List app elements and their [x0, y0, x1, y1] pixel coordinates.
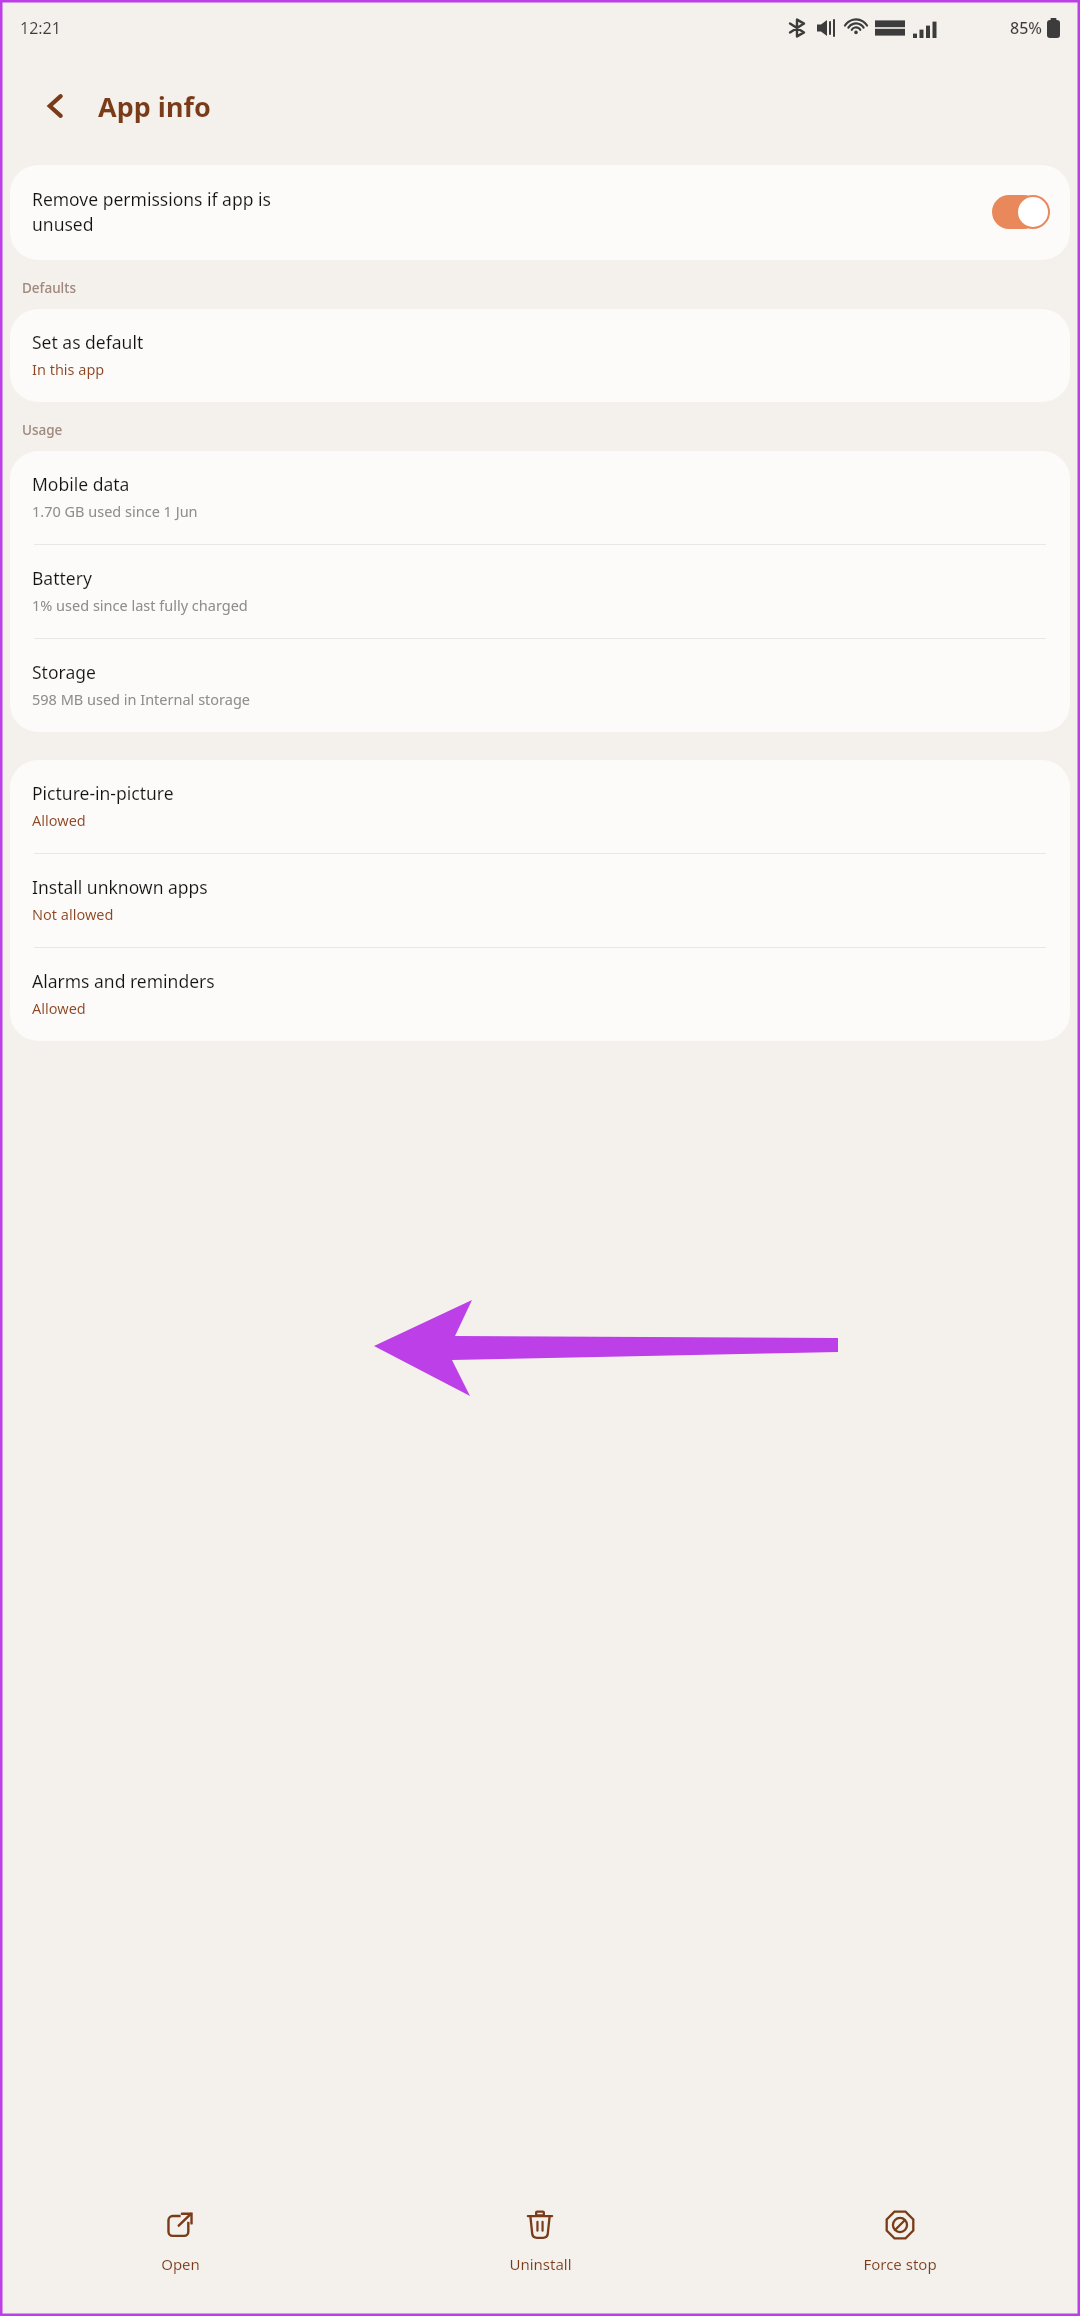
staticText: Allowed [32, 810, 86, 830]
button[interactable]: Open [0, 2166, 360, 2316]
staticText: Battery [32, 566, 92, 590]
staticText: 598 MB used in Internal storage [32, 689, 251, 709]
staticText: Mobile data [32, 472, 130, 496]
staticText: Not allowed [32, 904, 114, 924]
staticText: Usage [22, 421, 63, 439]
button[interactable]: Install unknown apps [10, 854, 1070, 947]
staticText: In this app [32, 359, 105, 379]
staticText: Defaults [22, 279, 76, 297]
button[interactable]: Back [28, 78, 84, 134]
staticText: Allowed [32, 998, 86, 1018]
button[interactable]: Set as default [10, 309, 1070, 402]
staticText: Storage [32, 660, 96, 684]
button[interactable]: Storage [10, 639, 1070, 732]
staticText: Remove permissions if app is unused [32, 187, 982, 236]
staticText: 12:21 [20, 17, 61, 39]
staticText: Alarms and reminders [32, 969, 215, 993]
button[interactable]: Uninstall [360, 2166, 720, 2316]
button[interactable]: Force stop [720, 2166, 1080, 2316]
staticText: Picture-in-picture [32, 781, 174, 805]
staticText: 85% [1010, 17, 1042, 39]
button[interactable]: Picture-in-picture [10, 760, 1070, 853]
staticText: Open [161, 2254, 200, 2274]
button[interactable]: Remove permissions toggle [992, 195, 1050, 229]
staticText: Force stop [863, 2254, 937, 2274]
staticText: App info [98, 88, 211, 125]
button[interactable]: Remove permissions if app is unused [10, 165, 1070, 260]
staticText: Uninstall [509, 2254, 572, 2274]
staticText: 1.70 GB used since 1 Jun [32, 501, 198, 521]
button[interactable]: Alarms and reminders [10, 948, 1070, 1041]
staticText: 1% used since last fully charged [32, 595, 248, 615]
button[interactable]: Mobile data [10, 451, 1070, 544]
staticText: Set as default [32, 330, 144, 354]
staticText: Install unknown apps [32, 875, 208, 899]
button[interactable]: Battery [10, 545, 1070, 638]
